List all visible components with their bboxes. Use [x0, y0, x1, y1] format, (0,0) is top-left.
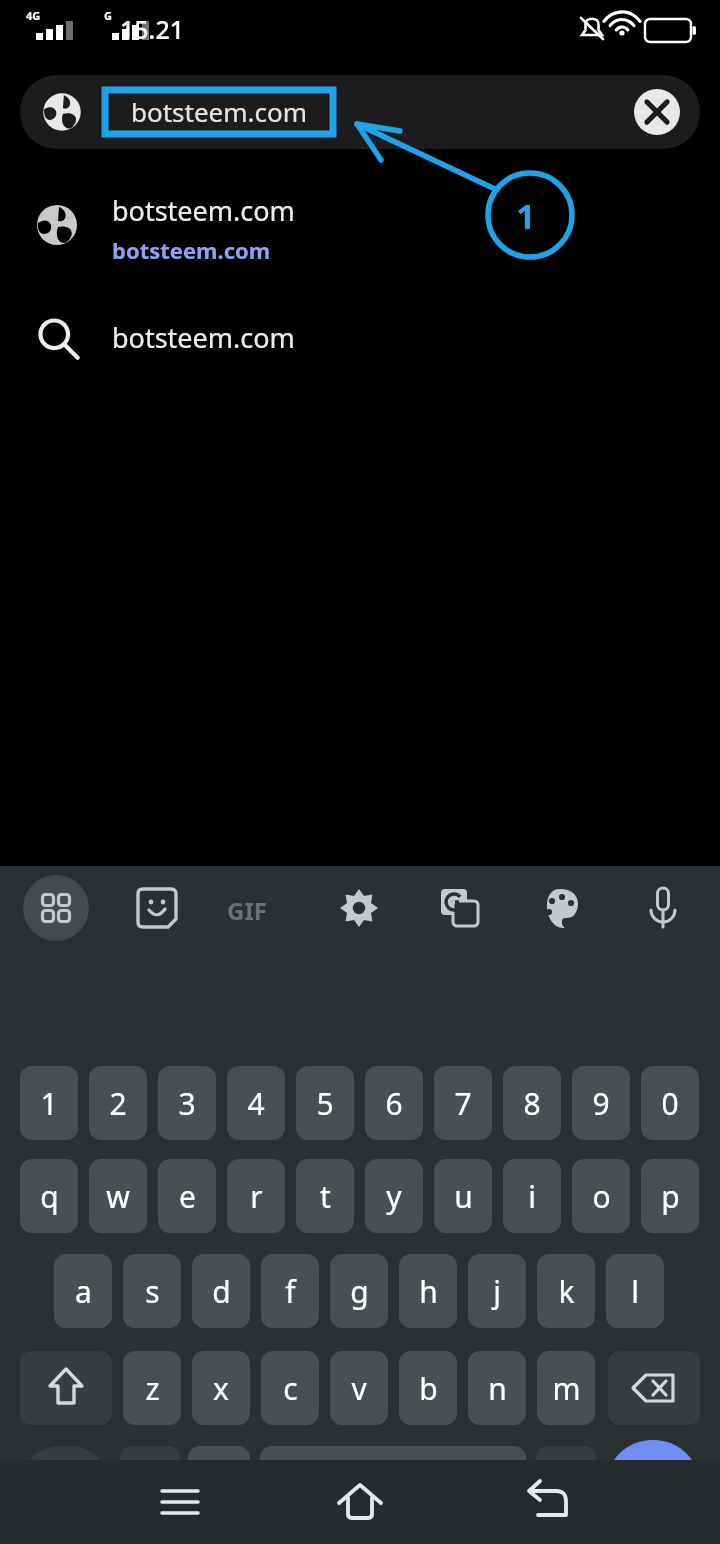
button[interactable]: ?123	[20, 1446, 110, 1526]
staticText: f	[285, 1271, 296, 1312]
staticText: 0	[661, 1083, 679, 1124]
staticText: s	[145, 1271, 160, 1312]
button[interactable]: Recents	[140, 1460, 220, 1544]
button[interactable]: v	[330, 1351, 388, 1425]
button[interactable]: Voice input	[630, 875, 696, 941]
staticText: 1	[516, 193, 536, 239]
button[interactable]: 3	[158, 1066, 216, 1140]
button[interactable]: 5	[296, 1066, 354, 1140]
button[interactable]: x	[192, 1351, 250, 1425]
button[interactable]: Space	[260, 1446, 526, 1526]
button[interactable]: 2	[89, 1066, 147, 1140]
staticText: k	[558, 1271, 575, 1312]
staticText: t	[320, 1176, 331, 1217]
button[interactable]: a	[54, 1254, 112, 1328]
staticText: 9	[592, 1083, 610, 1124]
staticText: w	[106, 1176, 130, 1217]
button[interactable]: botsteem.com	[0, 172, 720, 278]
button[interactable]: Stickers	[124, 875, 190, 941]
staticText: g	[350, 1271, 369, 1312]
button[interactable]: 6	[365, 1066, 423, 1140]
button[interactable]: f	[261, 1254, 319, 1328]
button[interactable]: Backspace	[608, 1351, 700, 1425]
staticText: 5	[316, 1083, 334, 1124]
button[interactable]: Back	[508, 1460, 588, 1544]
button[interactable]: l	[606, 1254, 664, 1328]
button[interactable]: Translate	[427, 875, 493, 941]
button[interactable]: o	[572, 1159, 630, 1233]
button[interactable]: w	[89, 1159, 147, 1233]
staticText: c	[283, 1368, 298, 1409]
staticText: 4	[247, 1083, 265, 1124]
button[interactable]: Site info	[20, 75, 700, 149]
button[interactable]: Shift	[20, 1351, 112, 1425]
button[interactable]: Themes	[528, 875, 594, 941]
button[interactable]: 7	[434, 1066, 492, 1140]
staticText: p	[661, 1176, 680, 1217]
staticText: G	[104, 8, 112, 23]
button[interactable]: 8	[503, 1066, 561, 1140]
button[interactable]: GIF	[225, 875, 291, 941]
button[interactable]: z	[123, 1351, 181, 1425]
button[interactable]: Keyboard modes	[23, 875, 89, 941]
staticText: GIF	[227, 894, 267, 927]
staticText: 4G	[26, 8, 41, 23]
button[interactable]: 9	[572, 1066, 630, 1140]
staticText: y	[386, 1176, 402, 1217]
button[interactable]: e	[158, 1159, 216, 1233]
button[interactable]: s	[123, 1254, 181, 1328]
staticText: 8	[523, 1083, 541, 1124]
button[interactable]: Home	[320, 1460, 400, 1544]
staticText: botsteem.com	[112, 319, 295, 356]
staticText: q	[40, 1176, 59, 1217]
button[interactable]: 4	[227, 1066, 285, 1140]
button[interactable]: Go	[606, 1440, 700, 1532]
button[interactable]: 1	[20, 1066, 78, 1140]
button[interactable]: n	[468, 1351, 526, 1425]
staticText: e	[179, 1176, 196, 1217]
staticText: 2	[109, 1083, 127, 1124]
staticText: botsteem.com	[131, 94, 308, 129]
button[interactable]: Clear	[634, 89, 680, 135]
button[interactable]: botsteem.com	[0, 300, 720, 376]
button[interactable]: b	[399, 1351, 457, 1425]
button[interactable]: i	[503, 1159, 561, 1233]
button[interactable]: h	[399, 1254, 457, 1328]
button[interactable]: m	[537, 1351, 595, 1425]
button[interactable]: c	[261, 1351, 319, 1425]
button[interactable]: u	[434, 1159, 492, 1233]
button[interactable]: d	[192, 1254, 250, 1328]
staticText: v	[351, 1368, 367, 1409]
staticText: o	[592, 1176, 611, 1217]
staticText: j	[493, 1271, 501, 1312]
staticText: z	[145, 1368, 160, 1409]
staticText: n	[488, 1368, 507, 1409]
staticText: 15.21	[120, 12, 185, 46]
staticText: 7	[454, 1083, 472, 1124]
button[interactable]: /	[120, 1446, 180, 1526]
button[interactable]: y	[365, 1159, 423, 1233]
staticText: l	[631, 1271, 639, 1312]
button[interactable]: p	[641, 1159, 699, 1233]
staticText: m	[552, 1368, 581, 1409]
button[interactable]: g	[330, 1254, 388, 1328]
button[interactable]: k	[537, 1254, 595, 1328]
other: Site info	[36, 86, 88, 138]
staticText: botsteem.com	[112, 235, 271, 265]
staticText: 6	[385, 1083, 403, 1124]
button[interactable]: Settings	[326, 875, 392, 941]
staticText: a	[75, 1271, 92, 1312]
button[interactable]: 0	[641, 1066, 699, 1140]
button[interactable]: q	[20, 1159, 78, 1233]
button[interactable]: r	[227, 1159, 285, 1233]
staticText: d	[212, 1271, 231, 1312]
staticText: 1	[40, 1083, 58, 1124]
staticText: r	[250, 1176, 263, 1217]
button[interactable]: j	[468, 1254, 526, 1328]
button[interactable]: t	[296, 1159, 354, 1233]
button[interactable]: Emoji	[188, 1446, 250, 1526]
button[interactable]	[536, 1446, 596, 1526]
staticText: botsteem.com	[112, 192, 295, 229]
